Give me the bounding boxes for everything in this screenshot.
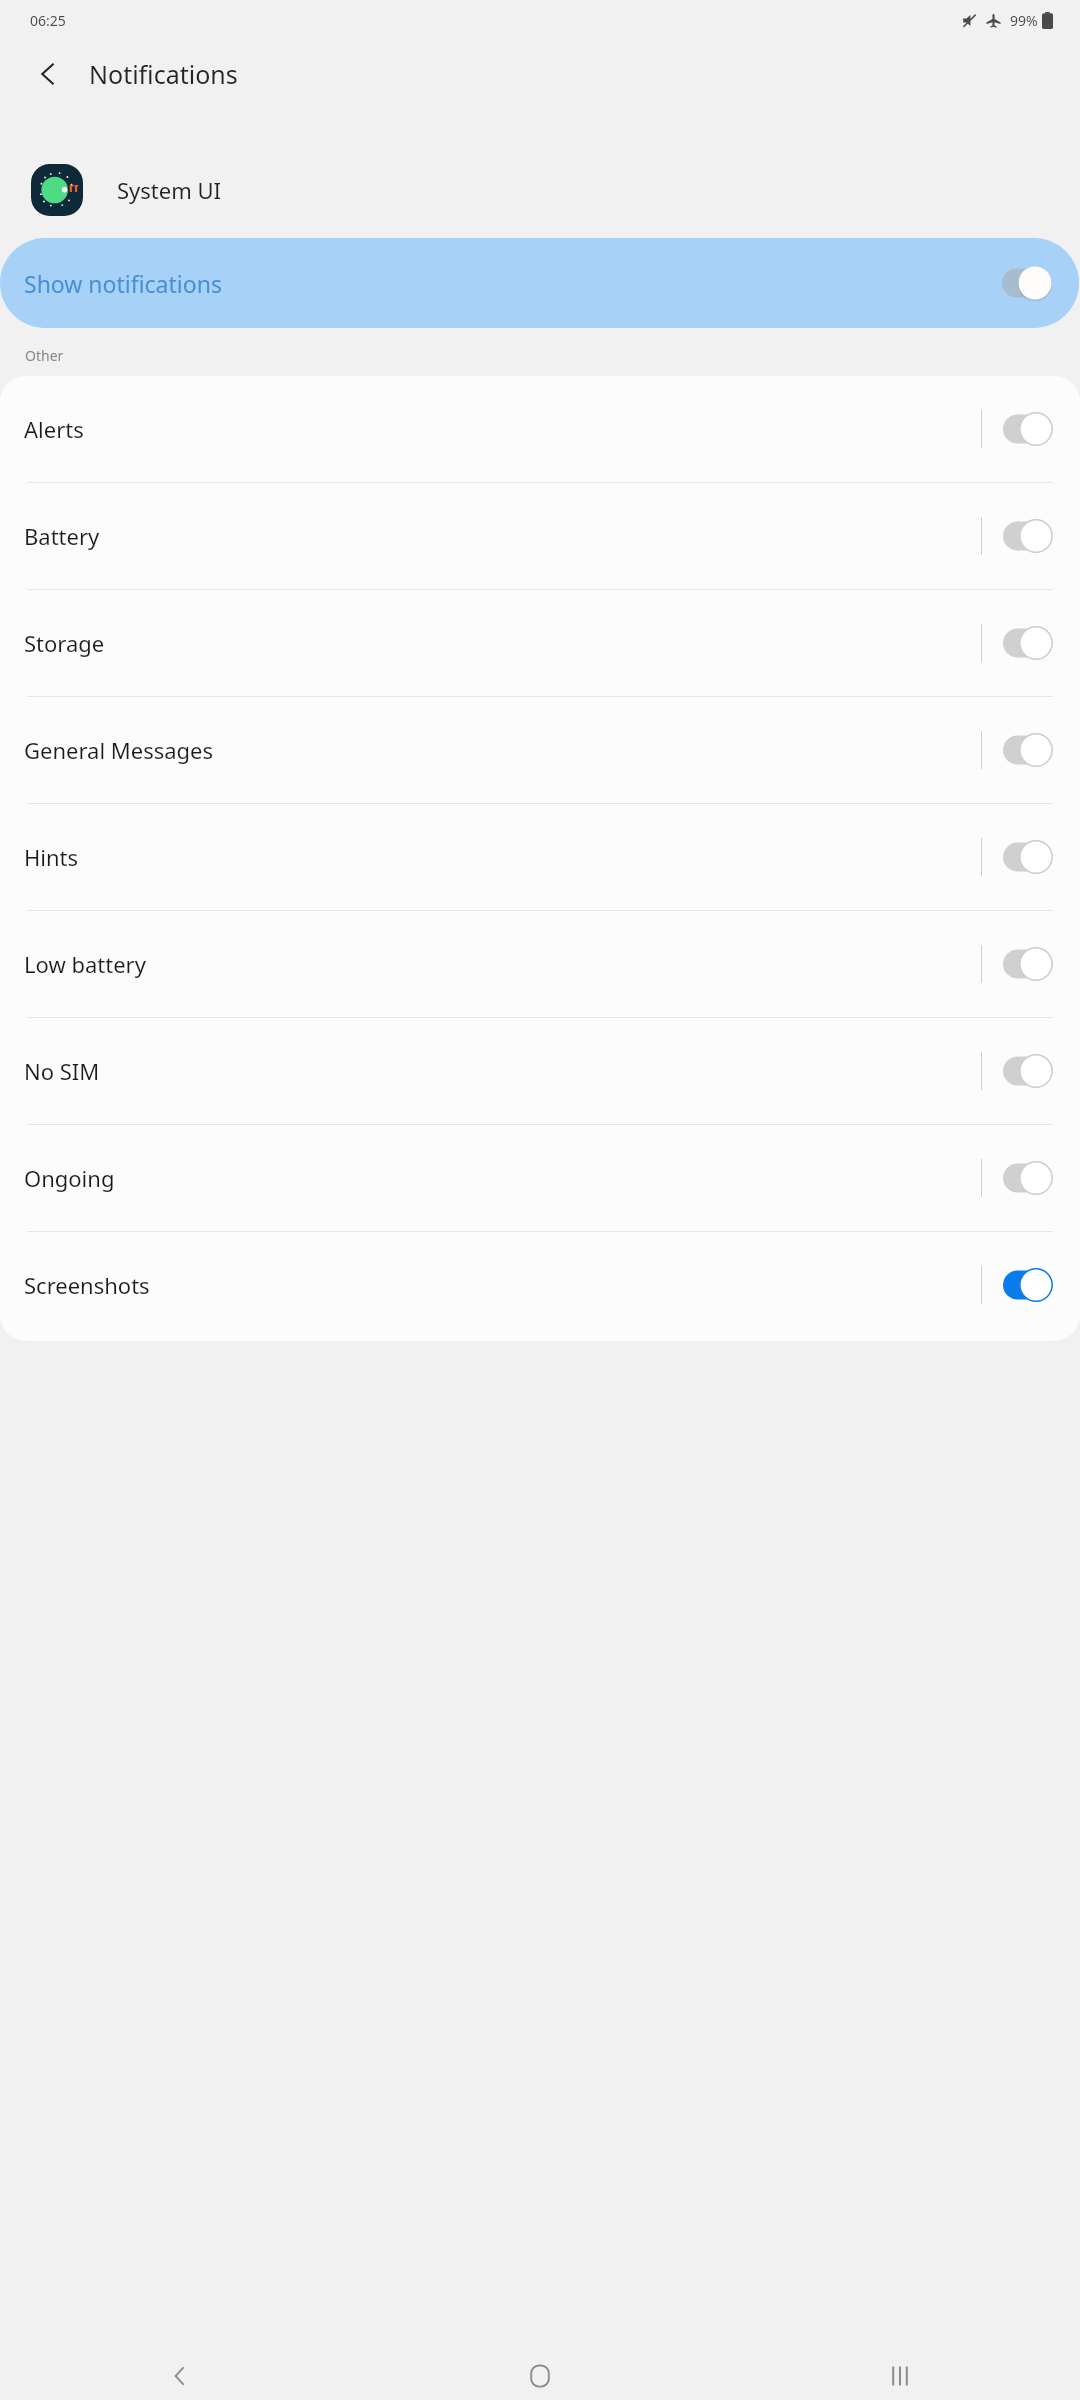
staticText: 99% — [1010, 11, 1038, 30]
button[interactable]: Battery off — [1003, 519, 1053, 553]
button[interactable]: General Messages off — [1003, 733, 1053, 767]
button[interactable]: Low battery off — [1003, 947, 1053, 981]
button[interactable]: General Messages — [0, 697, 1080, 803]
staticText: Show notifications — [24, 268, 222, 299]
staticText: System UI — [117, 175, 222, 205]
button[interactable]: Show notifications — [0, 238, 1079, 328]
button[interactable]: Alerts off — [1003, 412, 1053, 446]
staticText: 06:25 — [30, 11, 66, 30]
button[interactable]: Hints — [0, 804, 1080, 910]
button[interactable]: Alerts — [0, 376, 1080, 482]
staticText: Hints — [24, 842, 79, 872]
button[interactable]: Hints off — [1003, 840, 1053, 874]
button[interactable]: Back — [22, 48, 74, 100]
staticText: Battery — [24, 521, 100, 551]
staticText: Screenshots — [24, 1270, 150, 1300]
staticText: Low battery — [24, 949, 146, 979]
button[interactable]: No SIM — [0, 1018, 1080, 1124]
button[interactable]: Home — [360, 2352, 720, 2400]
button[interactable]: Low battery — [0, 911, 1080, 1017]
button[interactable]: Screenshots on — [1003, 1268, 1053, 1302]
staticText: Other — [25, 346, 64, 365]
staticText: No SIM — [24, 1056, 100, 1086]
button[interactable]: Storage — [0, 590, 1080, 696]
button[interactable]: Storage off — [1003, 626, 1053, 660]
button[interactable]: Ongoing — [0, 1125, 1080, 1231]
staticText: Notifications — [89, 57, 238, 91]
staticText: Ongoing — [24, 1163, 115, 1193]
button[interactable]: Recents — [720, 2352, 1080, 2400]
button[interactable]: Battery — [0, 483, 1080, 589]
button[interactable]: Ongoing off — [1003, 1161, 1053, 1195]
button[interactable]: Back — [0, 2352, 360, 2400]
staticText: General Messages — [24, 735, 214, 765]
button[interactable]: Screenshots — [0, 1232, 1080, 1338]
button[interactable]: No SIM off — [1003, 1054, 1053, 1088]
staticText: Alerts — [24, 414, 84, 444]
staticText: Storage — [24, 628, 105, 658]
